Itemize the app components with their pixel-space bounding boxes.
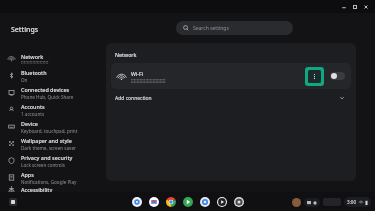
button[interactable]: Privacy and security [0,152,106,169]
staticText: Apps [21,171,34,178]
button[interactable]: Accessibility [0,186,106,192]
button[interactable]: Search settings [176,21,293,35]
button[interactable]: Bluetooth [0,67,106,84]
button[interactable]: Maximize [349,1,360,12]
staticText: 3:00 [347,199,357,205]
staticText: Connected devices [21,86,70,93]
staticText: Dark theme, screen saver [21,145,76,151]
button[interactable]: Wi-Fi details [305,67,324,86]
staticText: Phone Hub, Quick Share [21,94,74,100]
button[interactable]: System status [344,197,371,207]
button[interactable]: Close [360,1,371,12]
staticText: Add connection [115,95,152,102]
button[interactable]: Minimize [338,1,349,12]
button[interactable]: Settings [233,196,244,207]
button[interactable]: Launcher [131,196,142,207]
staticText: Search settings [193,25,229,32]
staticText: Bluetooth [21,69,47,76]
staticText: On [21,77,28,83]
button[interactable]: Device [0,118,106,135]
staticText: 1 accounts [21,111,45,117]
staticText: Network [115,51,137,58]
button[interactable]: Add connection [111,91,351,105]
button[interactable]: Account [292,198,301,207]
button[interactable]: Notifications [304,198,320,207]
button[interactable]: Gmail [148,196,159,207]
staticText: Settings [11,25,39,35]
staticText: Privacy and security [21,154,73,161]
button[interactable]: Network [0,50,106,67]
staticText: Network [21,53,44,60]
staticText: Accessibility [21,186,53,192]
button[interactable]: Apps [0,169,106,186]
button[interactable]: Accounts [0,101,106,118]
staticText: Wi-Fi [131,70,144,77]
button[interactable]: Wi-Fi toggle [330,72,345,80]
button[interactable]: YouTube [216,196,227,207]
staticText: Device [21,120,38,127]
button[interactable]: Chrome [165,196,176,207]
button[interactable]: Play Store [182,196,193,207]
staticText: Notifications, Google Play [21,179,77,185]
staticText: Keyboard, touchpad, print [21,128,78,134]
staticText: Lock screen controls [21,162,65,168]
staticText: Wallpaper and style [21,137,72,144]
button[interactable]: Files [199,196,210,207]
staticText: Accounts [21,103,45,110]
button[interactable]: Wallpaper and style [0,135,106,152]
button[interactable]: Connected devices [0,84,106,101]
button[interactable]: Launcher [9,198,17,206]
